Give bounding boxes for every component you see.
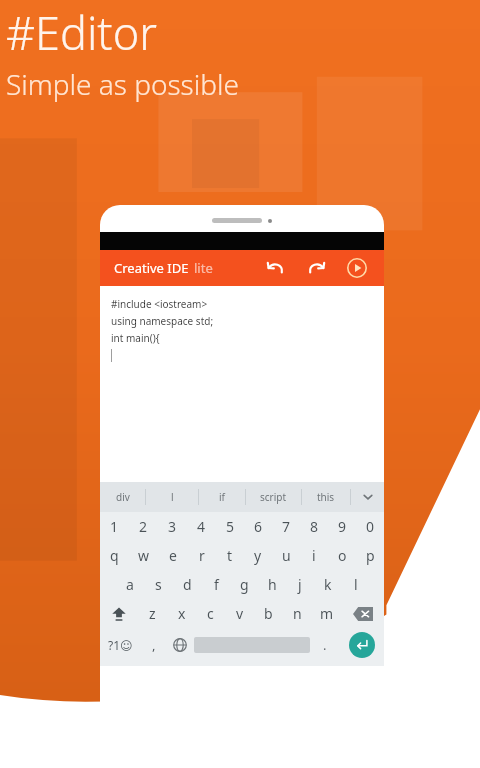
button[interactable]: 2 [129,512,158,541]
button[interactable]: , [141,628,166,662]
staticText: b [264,604,273,623]
staticText: using namespace std; [111,314,214,328]
button[interactable]: r [187,541,216,570]
button[interactable]: 1 [100,512,129,541]
staticText: u [282,546,291,565]
staticText: Creative IDE [114,259,189,277]
staticText: t [227,546,233,565]
button[interactable]: z [138,599,167,628]
button[interactable]: div [100,482,145,512]
button[interactable]: l [146,482,198,512]
staticText: r [199,546,205,565]
button[interactable]: p [356,541,384,570]
button[interactable]: m [312,599,341,628]
button[interactable]: u [272,541,300,570]
button[interactable]: e [158,541,187,570]
staticText: int main(){ [111,331,160,345]
staticText: 2 [139,517,148,536]
staticText: lite [194,259,213,277]
staticText: h [268,575,277,594]
button[interactable]: h [258,570,286,599]
button[interactable]: c [196,599,225,628]
button[interactable]: 7 [272,512,300,541]
button[interactable]: 0 [356,512,384,541]
button[interactable]: k [314,570,342,599]
button[interactable]: Redo [300,251,334,285]
button[interactable]: #include <iostream> [100,286,384,482]
button[interactable]: f [202,570,230,599]
button[interactable]: 4 [187,512,216,541]
staticText: s [155,575,162,594]
button[interactable]: Shift [100,599,138,628]
button[interactable]: 8 [300,512,328,541]
button[interactable]: if [199,482,245,512]
button[interactable]: Backspace [341,599,384,628]
staticText: #Editor [6,2,157,63]
button[interactable]: o [328,541,356,570]
staticText: y [254,546,262,565]
staticText: 1 [110,517,119,536]
button[interactable]: q [100,541,129,570]
staticText: this [317,490,335,504]
staticText: j [298,575,302,594]
staticText: #include <iostream> [111,297,208,311]
staticText: l [354,575,358,594]
staticText: . [323,636,327,654]
staticText: 9 [338,517,347,536]
button[interactable]: 9 [328,512,356,541]
button[interactable]: this [302,482,350,512]
button[interactable]: l [342,570,370,599]
button[interactable]: d [173,570,202,599]
button[interactable]: j [286,570,314,599]
button[interactable]: 5 [216,512,244,541]
button[interactable]: Change language [166,628,194,662]
staticText: if [219,490,226,504]
button[interactable]: s [144,570,173,599]
staticText: 6 [254,517,263,536]
button[interactable]: Run [340,251,374,285]
staticText: g [240,575,249,594]
staticText: n [293,604,302,623]
button[interactable]: x [167,599,196,628]
button[interactable]: w [129,541,158,570]
staticText: script [260,490,287,504]
button[interactable]: i [300,541,328,570]
button[interactable]: 3 [158,512,187,541]
staticText: e [169,546,177,565]
staticText: v [236,604,244,623]
button[interactable]: Enter [349,632,375,658]
staticText: p [366,546,375,565]
button[interactable]: n [283,599,312,628]
staticText: div [116,490,130,504]
staticText: o [338,546,347,565]
button[interactable]: 6 [244,512,272,541]
button[interactable]: b [254,599,283,628]
button[interactable]: Hide suggestions [351,482,384,512]
staticText: d [183,575,192,594]
staticText: m [320,604,334,623]
staticText: 0 [366,517,375,536]
button[interactable]: Undo [258,251,292,285]
button[interactable]: script [246,482,301,512]
staticText: c [207,604,214,623]
button[interactable]: a [115,570,144,599]
button[interactable]: g [230,570,258,599]
staticText: l [171,490,174,504]
staticText: 8 [310,517,319,536]
staticText: ?1☺ [108,637,133,653]
staticText: q [110,546,119,565]
staticText: 7 [282,517,291,536]
button[interactable]: v [225,599,254,628]
staticText: 4 [197,517,206,536]
button[interactable]: y [244,541,272,570]
staticText: Simple as possible [6,65,239,103]
staticText: 3 [168,517,177,536]
staticText: x [178,604,186,623]
staticText: k [324,575,332,594]
button[interactable]: ?1☺ [100,628,141,662]
staticText: w [138,546,150,565]
button[interactable]: . [310,628,340,662]
staticText: a [126,575,134,594]
button[interactable]: t [216,541,244,570]
